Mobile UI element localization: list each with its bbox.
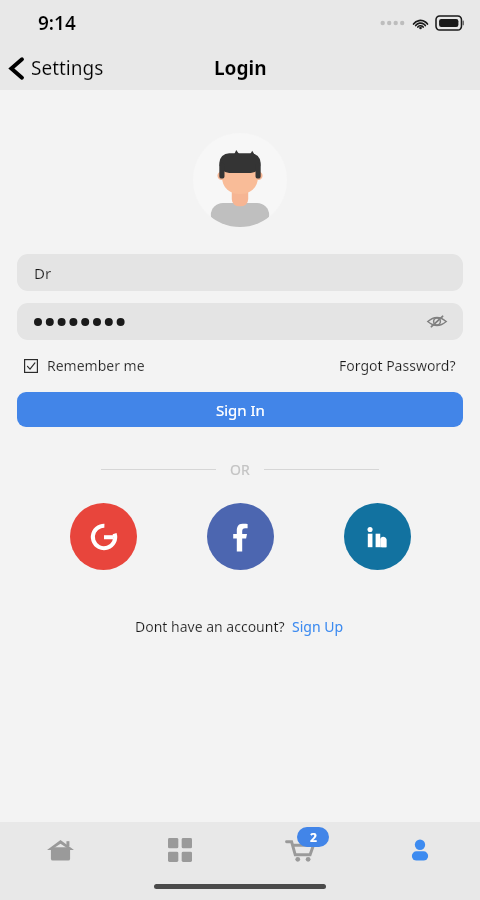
staticText: Dr: [34, 263, 52, 283]
button[interactable]: Profile photo: [193, 133, 287, 227]
staticText: OR: [230, 460, 250, 479]
button[interactable]: Show password: [17, 303, 463, 340]
button[interactable]: Sign Up: [290, 615, 346, 638]
button[interactable]: Show password: [423, 311, 451, 332]
button[interactable]: Cart, 2 items: [240, 822, 360, 878]
button[interactable]: Remember me: [22, 352, 147, 379]
button[interactable]: Categories: [120, 822, 240, 878]
staticText: Sign In: [216, 400, 265, 420]
staticText: 2: [310, 829, 317, 845]
staticText: Forgot Password?: [339, 356, 456, 375]
button[interactable]: Settings: [0, 49, 114, 87]
staticText: Sign Up: [292, 617, 344, 636]
button[interactable]: Sign in with LinkedIn: [344, 503, 411, 570]
staticText: Dont have an account?: [135, 617, 285, 636]
button[interactable]: Forgot Password?: [337, 352, 458, 379]
button[interactable]: Sign in with Google: [70, 503, 137, 570]
staticText: Settings: [31, 55, 104, 81]
button[interactable]: Profile: [360, 822, 480, 878]
staticText: 9:14: [38, 10, 76, 36]
button[interactable]: Sign In: [17, 392, 463, 427]
button[interactable]: Sign in with Facebook: [207, 503, 274, 570]
staticText: Remember me: [47, 356, 145, 375]
button[interactable]: Dr: [17, 254, 463, 291]
staticText: Login: [214, 55, 267, 81]
button[interactable]: Home: [0, 822, 120, 878]
